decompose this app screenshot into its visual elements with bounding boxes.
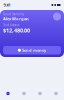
button[interactable]: Send money <box>3 46 61 54</box>
button[interactable]: Activity <box>32 87 48 100</box>
staticText: Total balance <box>3 23 20 27</box>
button[interactable]: Cards <box>16 87 32 100</box>
staticText: Good morning <box>3 12 24 16</box>
staticText: Send money <box>22 48 46 53</box>
staticText: Alex Morgan <box>3 16 29 21</box>
button[interactable]: Home <box>0 87 16 100</box>
button[interactable]: Profile <box>48 87 64 100</box>
staticText: 9:41 <box>3 2 10 8</box>
staticText: $12,480.00 <box>3 27 30 34</box>
